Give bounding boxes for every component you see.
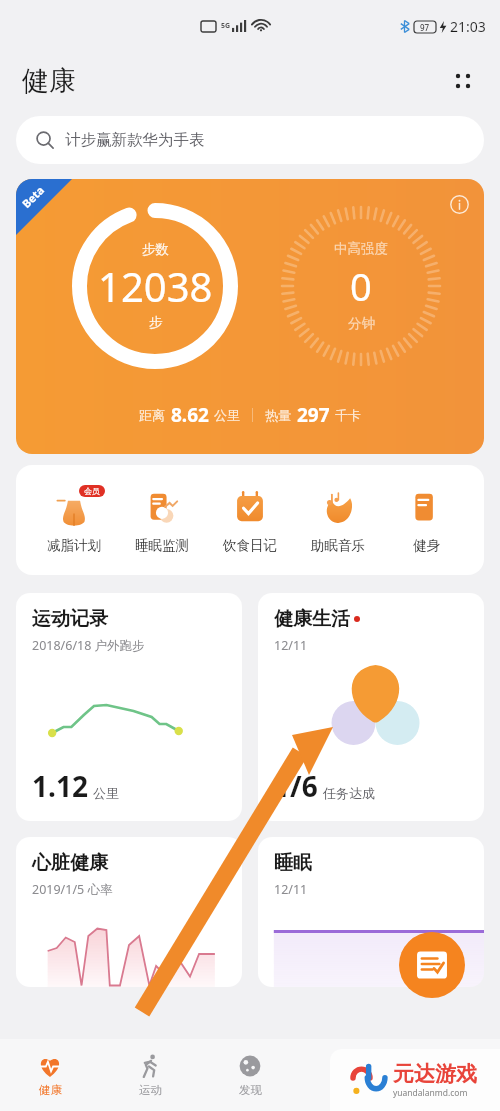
button[interactable]: 计步赢新款华为手表 bbox=[16, 116, 484, 164]
button[interactable]: 健康生活 bbox=[258, 593, 484, 821]
staticText: 97 bbox=[420, 22, 430, 33]
staticText: 热量 bbox=[265, 407, 291, 423]
staticText: 12038 bbox=[98, 259, 213, 313]
staticText: 步数 bbox=[142, 241, 169, 258]
staticText: 睡眠 bbox=[274, 851, 312, 875]
button[interactable]: 会员 bbox=[30, 465, 118, 575]
button[interactable]: 心脏健康 bbox=[16, 837, 242, 987]
staticText: 0 bbox=[350, 260, 372, 312]
staticText: 发现 bbox=[239, 1083, 262, 1097]
staticText: 设备 bbox=[339, 1083, 362, 1097]
button[interactable]: 健康 bbox=[0, 1039, 100, 1111]
staticText: 12/11 bbox=[274, 881, 308, 898]
staticText: 297 bbox=[297, 402, 330, 428]
staticText: 2019/1/5 心率 bbox=[32, 881, 113, 898]
staticText: 2018/6/18 户外跑步 bbox=[32, 637, 145, 654]
staticText: Beta bbox=[18, 182, 47, 211]
staticText: 中高强度 bbox=[334, 240, 388, 257]
staticText: 8.62 bbox=[171, 402, 209, 428]
button[interactable]: More options bbox=[444, 62, 482, 100]
button[interactable]: 睡眠 bbox=[258, 837, 484, 987]
staticText: 任务达成 bbox=[323, 785, 375, 801]
staticText: 运动 bbox=[139, 1083, 162, 1097]
button[interactable]: 睡眠监测 bbox=[118, 465, 206, 575]
staticText: 公里 bbox=[214, 407, 240, 423]
staticText: 千卡 bbox=[335, 407, 361, 423]
staticText: 元达游戏 bbox=[393, 1061, 477, 1087]
staticText: 健身 bbox=[413, 537, 440, 554]
staticText: 1/6 bbox=[274, 767, 318, 805]
button[interactable]: Information bbox=[444, 189, 474, 219]
staticText: 12/11 bbox=[274, 637, 308, 654]
staticText: 心脏健康 bbox=[32, 851, 108, 875]
staticText: 计步赢新款华为手表 bbox=[65, 130, 205, 150]
staticText: 减脂计划 bbox=[47, 537, 101, 554]
staticText: 21:03 bbox=[450, 17, 486, 36]
staticText: 公里 bbox=[93, 785, 119, 801]
staticText: 距离 bbox=[139, 407, 165, 423]
staticText: 健康 bbox=[39, 1083, 62, 1097]
button[interactable]: 运动 bbox=[100, 1039, 200, 1111]
button[interactable]: Add record bbox=[399, 932, 465, 998]
button[interactable]: 健身 bbox=[382, 465, 470, 575]
button[interactable]: 我的 bbox=[400, 1039, 500, 1111]
staticText: 我的 bbox=[439, 1083, 462, 1097]
button[interactable]: Beta bbox=[16, 179, 484, 454]
button[interactable]: 饮食日记 bbox=[206, 465, 294, 575]
staticText: 助眠音乐 bbox=[311, 537, 365, 554]
staticText: 1.12 bbox=[32, 767, 88, 805]
button[interactable]: 运动记录 bbox=[16, 593, 242, 821]
staticText: 健康生活 bbox=[274, 607, 350, 631]
staticText: yuandalanmd.com bbox=[393, 1087, 468, 1099]
staticText: 健康 bbox=[22, 64, 76, 98]
button[interactable]: 助眠音乐 bbox=[294, 465, 382, 575]
button[interactable]: 发现 bbox=[200, 1039, 300, 1111]
staticText: 5G bbox=[221, 21, 231, 31]
staticText: 会员 bbox=[84, 486, 100, 496]
staticText: 睡眠监测 bbox=[135, 537, 189, 554]
staticText: 步 bbox=[149, 314, 163, 331]
staticText: 饮食日记 bbox=[223, 537, 277, 554]
staticText: 运动记录 bbox=[32, 607, 108, 631]
staticText: 分钟 bbox=[348, 315, 375, 332]
button[interactable]: 设备 bbox=[300, 1039, 400, 1111]
